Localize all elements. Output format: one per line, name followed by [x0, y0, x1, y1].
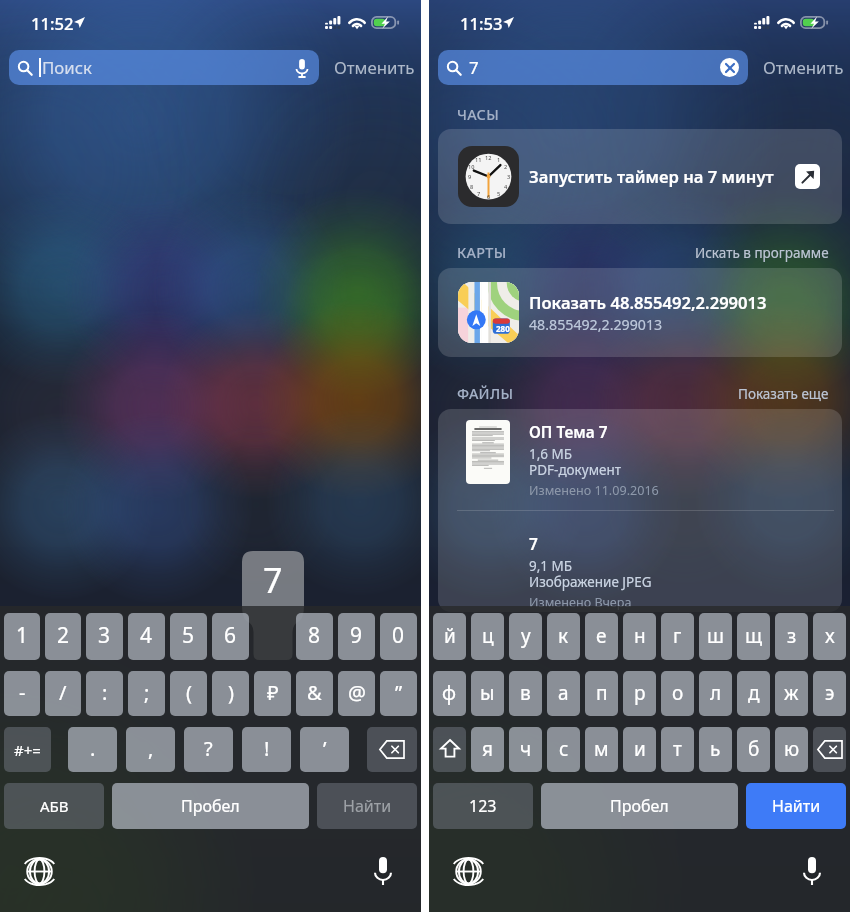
button[interactable]: ы: [471, 671, 504, 716]
button[interactable]: щ: [737, 613, 770, 660]
button[interactable]: ?: [184, 727, 233, 772]
button[interactable]: Clear search: [720, 58, 739, 77]
button[interactable]: 4: [128, 613, 165, 660]
button[interactable]: ц: [471, 613, 504, 660]
button[interactable]: !: [242, 727, 291, 772]
button[interactable]: -: [4, 671, 40, 716]
button[interactable]: ): [212, 671, 249, 716]
button[interactable]: Dictation: [373, 857, 393, 885]
button[interactable]: к: [547, 613, 580, 660]
button[interactable]: 0: [380, 613, 417, 660]
button[interactable]: 9: [338, 613, 375, 660]
staticText: 11:53: [460, 12, 503, 35]
button[interactable]: ”: [380, 671, 417, 716]
button[interactable]: ч: [509, 727, 542, 772]
staticText: 5: [182, 621, 195, 650]
button[interactable]: 8: [296, 613, 333, 660]
button[interactable]: ш: [699, 613, 732, 660]
button[interactable]: э: [813, 671, 846, 716]
button[interactable]: 5: [170, 613, 207, 660]
button[interactable]: 7: [438, 50, 748, 85]
button[interactable]: Change keyboard language: [455, 858, 482, 885]
staticText: 280: [496, 323, 510, 334]
button[interactable]: Backspace: [367, 727, 417, 772]
staticText: м: [594, 736, 609, 762]
button[interactable]: Найти: [746, 783, 846, 829]
button[interactable]: 6: [212, 613, 249, 660]
button[interactable]: Shift: [433, 727, 466, 772]
button[interactable]: ф: [433, 671, 466, 716]
button[interactable]: 2: [45, 613, 81, 660]
button[interactable]: @: [338, 671, 375, 716]
button[interactable]: 280: [438, 268, 842, 357]
button[interactable]: Backspace: [813, 727, 846, 772]
button[interactable]: Пробел: [112, 783, 309, 829]
button[interactable]: АБВ: [4, 783, 104, 829]
staticText: Пробел: [181, 795, 240, 817]
button[interactable]: о: [661, 671, 694, 716]
button[interactable]: е: [585, 613, 618, 660]
button[interactable]: Отменить: [755, 50, 850, 85]
button[interactable]: Open in app: [795, 164, 820, 189]
button[interactable]: з: [775, 613, 808, 660]
button[interactable]: й: [433, 613, 466, 660]
button[interactable]: б: [737, 727, 770, 772]
button[interactable]: Voice search: [296, 59, 308, 77]
button[interactable]: д: [737, 671, 770, 716]
staticText: -: [19, 679, 26, 706]
button[interactable]: Найти: [317, 783, 417, 829]
staticText: е: [596, 623, 607, 649]
button[interactable]: Пробел: [541, 783, 738, 829]
button[interactable]: м: [585, 727, 618, 772]
button[interactable]: Change keyboard language: [26, 858, 53, 885]
button[interactable]: Отменить: [326, 50, 421, 85]
button[interactable]: л: [699, 671, 732, 716]
button[interactable]: в: [509, 671, 542, 716]
staticText: 10: [468, 163, 475, 171]
staticText: 7: [469, 56, 479, 79]
staticText: ОП Тема 7: [529, 422, 608, 443]
button[interactable]: 3: [86, 613, 123, 660]
button[interactable]: .: [68, 727, 117, 772]
button[interactable]: р: [623, 671, 656, 716]
button[interactable]: #+=: [4, 727, 51, 772]
button[interactable]: х: [813, 613, 846, 660]
button[interactable]: Dictation: [802, 857, 822, 885]
button[interactable]: :: [86, 671, 123, 716]
staticText: б: [748, 736, 760, 762]
button[interactable]: с: [547, 727, 580, 772]
button[interactable]: ₽: [254, 671, 291, 716]
button[interactable]: 7: [438, 511, 842, 612]
button[interactable]: 123: [433, 783, 533, 829]
button[interactable]: ’: [300, 727, 349, 772]
button[interactable]: и: [623, 727, 656, 772]
staticText: 3: [507, 173, 511, 181]
button[interactable]: Поиск: [9, 50, 319, 85]
button[interactable]: ж: [775, 671, 808, 716]
button[interactable]: Искать в программе: [681, 235, 850, 265]
button[interactable]: г: [661, 613, 694, 660]
button[interactable]: п: [585, 671, 618, 716]
button[interactable]: /: [45, 671, 81, 716]
button[interactable]: Показать еще: [724, 376, 850, 406]
button[interactable]: &: [296, 671, 333, 716]
button[interactable]: ь: [699, 727, 732, 772]
button[interactable]: 12: [438, 129, 842, 224]
button[interactable]: т: [661, 727, 694, 772]
button[interactable]: ;: [128, 671, 165, 716]
button[interactable]: ,: [126, 727, 175, 772]
button[interactable]: я: [471, 727, 504, 772]
staticText: ы: [480, 680, 495, 706]
button[interactable]: у: [509, 613, 542, 660]
button[interactable]: а: [547, 671, 580, 716]
staticText: н: [634, 623, 646, 649]
staticText: @: [348, 679, 366, 706]
button[interactable]: ю: [775, 727, 808, 772]
button[interactable]: (: [170, 671, 207, 716]
staticText: PDF-документ: [529, 461, 622, 479]
button[interactable]: ОП Тема 7: [438, 409, 842, 510]
button[interactable]: 1: [4, 613, 40, 660]
staticText: :: [102, 679, 108, 706]
staticText: г: [673, 623, 682, 649]
button[interactable]: н: [623, 613, 656, 660]
